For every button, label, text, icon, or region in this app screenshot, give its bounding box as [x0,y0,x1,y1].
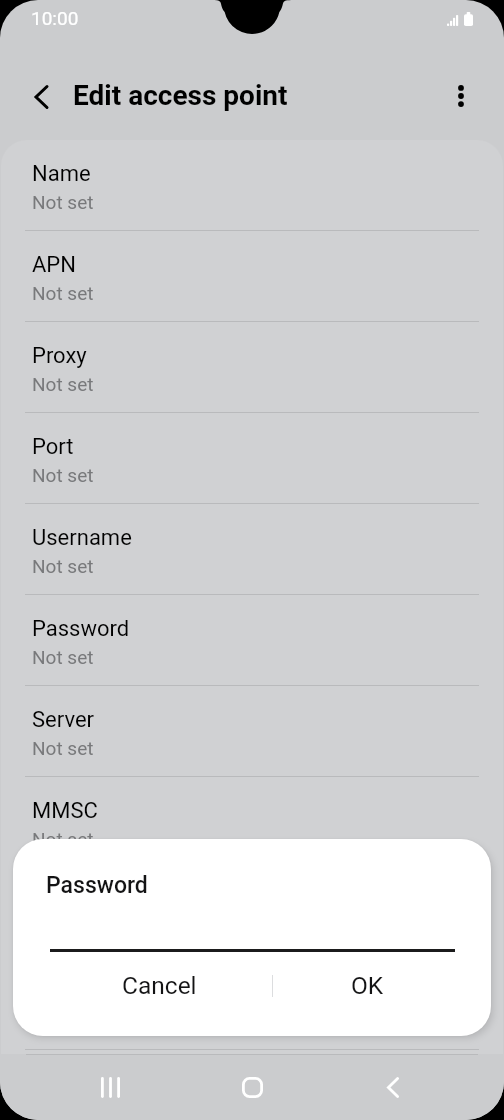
button[interactable]: MMSC [1,777,503,867]
staticText: MMS proxy [32,889,143,915]
button[interactable]: APN [1,231,503,321]
staticText: Not set [32,373,94,395]
staticText: Proxy [32,343,87,369]
button[interactable]: OK [264,961,470,1009]
button[interactable]: Password [1,595,503,685]
staticText: OK [351,971,384,1000]
button[interactable]: Back [365,1059,421,1115]
staticText: Not set [32,646,94,668]
staticText: MMS port [32,980,130,1006]
button[interactable]: Home [224,1059,280,1115]
staticText: Password [46,872,148,899]
button[interactable]: Back [17,73,65,121]
staticText: Not set [32,555,94,577]
button[interactable]: Recent apps [82,1059,138,1115]
staticText: Port [32,434,74,460]
staticText: Server [32,707,95,733]
staticText: Edit access point [73,79,288,112]
button[interactable]: More options [437,72,485,120]
staticText: Cancel [122,971,197,1000]
button[interactable]: MMS proxy [1,868,503,958]
staticText: Not set [32,464,94,486]
staticText: Not set [32,191,94,213]
staticText: Not set [32,737,94,759]
staticText: MMSC [32,798,98,824]
button[interactable]: Name [1,140,503,230]
button[interactable]: Cancel [35,961,283,1009]
staticText: Username [32,525,132,551]
button[interactable]: Port [1,413,503,503]
button[interactable]: Username [1,504,503,594]
staticText: APN [32,252,76,278]
button[interactable]: MMS port [1,959,503,1049]
button[interactable]: Server [1,686,503,776]
staticText: Password [32,616,130,642]
staticText: Name [32,161,91,187]
staticText: 10:00 [31,7,79,29]
staticText: Not set [32,282,94,304]
staticText: Not set [32,828,94,850]
button[interactable]: Proxy [1,322,503,412]
